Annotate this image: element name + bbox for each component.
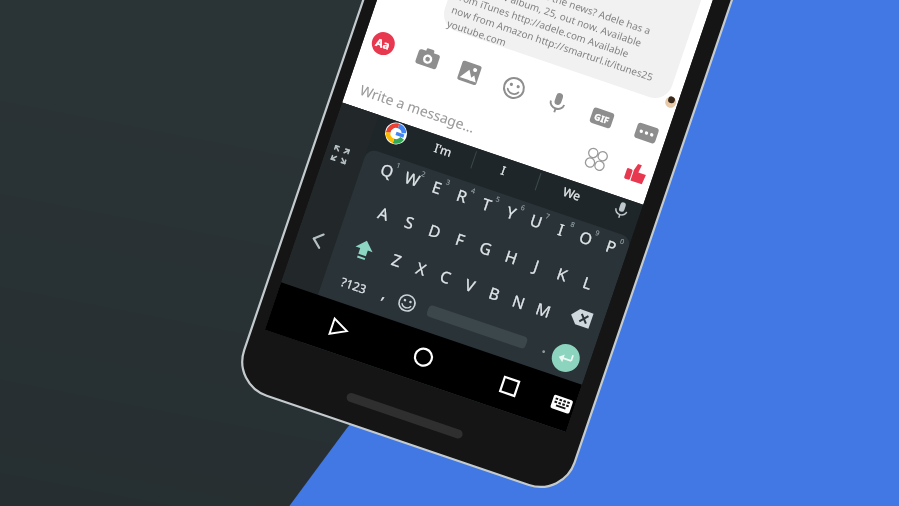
button[interactable] xyxy=(0,0,899,506)
